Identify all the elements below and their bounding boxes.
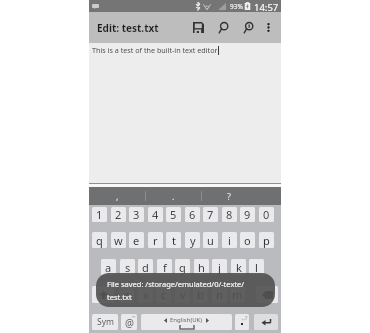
- button[interactable]: s: [120, 259, 135, 275]
- staticText: ,,?: [242, 314, 248, 321]
- staticText: File saved: /storage/emulated/0/-texte/ …: [107, 279, 245, 302]
- button[interactable]: c: [156, 286, 171, 303]
- button[interactable]: Sym: [92, 314, 118, 330]
- button[interactable]: 8: [222, 207, 237, 222]
- button[interactable]: .: [145, 187, 201, 205]
- staticText: b: [197, 287, 204, 302]
- staticText: 8: [226, 207, 233, 222]
- staticText: '": [132, 314, 136, 321]
- staticText: i: [228, 233, 231, 248]
- button[interactable]: d: [138, 259, 153, 275]
- button[interactable]: Space: [141, 314, 232, 330]
- button[interactable]: z: [119, 286, 134, 303]
- button[interactable]: x: [138, 286, 153, 303]
- button[interactable]: p: [259, 232, 274, 248]
- staticText: This is a test of the built-in text edit…: [92, 45, 218, 55]
- staticText: o: [244, 233, 251, 248]
- button[interactable]: 5: [166, 207, 181, 222]
- button[interactable]: b: [193, 286, 208, 303]
- staticText: f: [163, 260, 167, 275]
- staticText: 0: [263, 207, 270, 222]
- button[interactable]: l: [249, 259, 264, 275]
- staticText: k: [236, 260, 242, 275]
- staticText: 9: [244, 207, 251, 222]
- button[interactable]: Shift: [92, 286, 114, 303]
- staticText: s: [125, 260, 131, 275]
- staticText: 14:57: [254, 1, 279, 13]
- staticText: a: [105, 260, 112, 275]
- staticText: d: [142, 260, 149, 275]
- button[interactable]: 4: [148, 207, 163, 222]
- staticText: 6: [189, 207, 196, 222]
- staticText: 1: [96, 207, 103, 222]
- staticText: Sym: [97, 316, 114, 328]
- staticText: t: [172, 233, 176, 248]
- button[interactable]: 9: [240, 207, 255, 222]
- staticText: j: [218, 260, 221, 275]
- button[interactable]: ,: [89, 187, 145, 205]
- button[interactable]: ,,?: [235, 314, 249, 330]
- staticText: h: [198, 260, 205, 275]
- button[interactable]: w: [111, 232, 126, 248]
- staticText: e: [133, 233, 140, 248]
- staticText: 7: [207, 207, 214, 222]
- button[interactable]: Enter: [254, 314, 278, 330]
- button[interactable]: u: [203, 232, 218, 248]
- button[interactable]: Save: [187, 16, 210, 39]
- button[interactable]: ?: [201, 187, 257, 205]
- button[interactable]: j: [212, 259, 227, 275]
- button[interactable]: a: [101, 259, 116, 275]
- button[interactable]: v: [175, 286, 190, 303]
- button[interactable]: h: [194, 259, 209, 275]
- staticText: q: [96, 233, 103, 248]
- staticText: n: [216, 287, 223, 302]
- button[interactable]: e: [129, 232, 144, 248]
- staticText: 93%: [230, 2, 243, 11]
- button[interactable]: More options: [259, 16, 277, 39]
- staticText: v: [180, 287, 186, 302]
- staticText: w: [114, 233, 123, 248]
- button[interactable]: @: [121, 314, 137, 330]
- button[interactable]: n: [212, 286, 227, 303]
- staticText: 4: [152, 207, 159, 222]
- staticText: z: [124, 287, 130, 302]
- staticText: c: [161, 287, 167, 302]
- button[interactable]: t: [166, 232, 181, 248]
- button[interactable]: f: [157, 259, 172, 275]
- staticText: Edit: test.txt: [97, 21, 159, 35]
- button[interactable]: 7: [203, 207, 218, 222]
- staticText: ,: [116, 190, 119, 202]
- button[interactable]: q: [92, 232, 107, 248]
- staticText: x: [143, 287, 149, 302]
- staticText: u: [207, 233, 214, 248]
- button[interactable]: Search: [213, 16, 236, 39]
- staticText: p: [263, 233, 270, 248]
- button[interactable]: i: [222, 232, 237, 248]
- button[interactable]: g: [175, 259, 190, 275]
- button[interactable]: k: [231, 259, 246, 275]
- button[interactable]: o: [240, 232, 255, 248]
- staticText: 5: [170, 207, 177, 222]
- staticText: ?: [227, 190, 231, 202]
- staticText: r: [153, 233, 158, 248]
- button[interactable]: m: [230, 286, 245, 303]
- staticText: .: [172, 190, 175, 202]
- button[interactable]: Backspace: [256, 286, 278, 303]
- staticText: @: [125, 316, 134, 330]
- staticText: 3: [133, 207, 140, 222]
- staticText: m: [232, 287, 243, 302]
- button[interactable]: 0: [259, 207, 274, 222]
- button[interactable]: 3: [129, 207, 144, 222]
- button[interactable]: 6: [185, 207, 200, 222]
- button[interactable]: Find next: [238, 16, 261, 39]
- staticText: 2: [115, 207, 122, 222]
- staticText: l: [255, 260, 258, 275]
- staticText: English(UK): [170, 316, 203, 324]
- staticText: y: [190, 233, 196, 248]
- button[interactable]: 1: [92, 207, 107, 222]
- button[interactable]: 2: [111, 207, 126, 222]
- button[interactable]: r: [148, 232, 163, 248]
- staticText: g: [179, 260, 186, 275]
- button[interactable]: y: [185, 232, 200, 248]
